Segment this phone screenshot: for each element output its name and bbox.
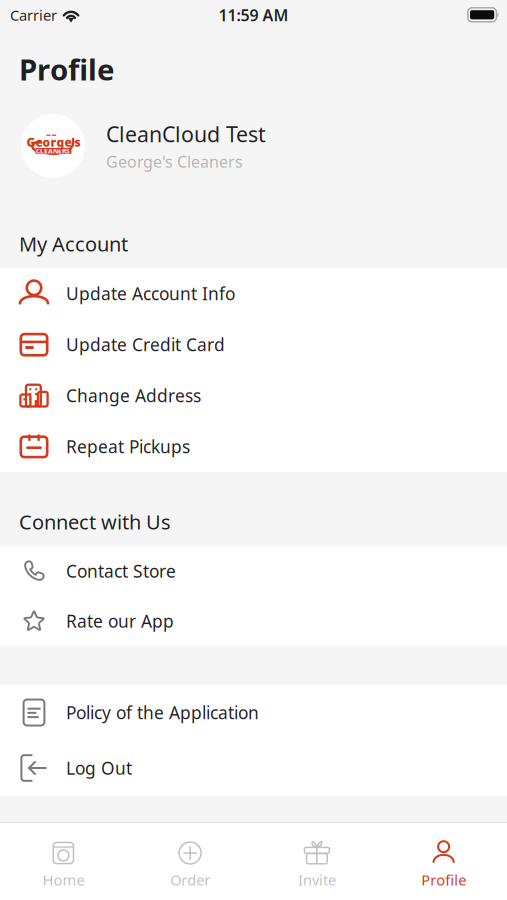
staticText: George's [26,134,80,150]
button[interactable]: Invite [253,822,380,900]
staticText: Update Account Info [66,282,235,305]
button[interactable]: Rate our App [0,596,507,646]
button[interactable]: Home [0,822,127,900]
button[interactable]: Policy of the Application [0,685,507,740]
staticText: Log Out [66,756,132,779]
staticText: Change Address [66,384,201,407]
staticText: CLEANERS [36,147,70,155]
staticText: 11:59 AM [218,4,288,26]
staticText: Contact Store [66,559,176,582]
staticText: Profile [19,49,115,88]
staticText: Profile [421,870,466,889]
staticText: Order [170,870,210,889]
staticText: Repeat Pickups [66,435,190,458]
staticText: Rate our App [66,609,174,632]
button[interactable]: Repeat Pickups [0,421,507,472]
button[interactable]: Profile [380,822,507,900]
button[interactable]: Update Account Info [0,268,507,319]
staticText: Home [42,870,84,889]
button[interactable]: Contact Store [0,546,507,596]
staticText: George's Cleaners [106,151,243,172]
staticText: Update Credit Card [66,333,225,356]
staticText: Invite [298,870,336,889]
staticText: Carrier [10,5,57,25]
staticText: CleanCloud Test [106,120,266,148]
button[interactable]: Order [127,822,254,900]
staticText: Policy of the Application [66,701,259,724]
button[interactable]: Update Credit Card [0,319,507,370]
button[interactable]: Change Address [0,370,507,421]
button[interactable]: Log Out [0,740,507,796]
staticText: My Account [19,230,128,257]
staticText: Connect with Us [19,508,171,535]
